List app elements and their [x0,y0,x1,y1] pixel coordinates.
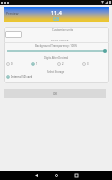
staticText: 3 [87,62,89,66]
staticText: Internal SD card [11,75,33,79]
button[interactable]: 0 [6,62,28,66]
staticText: Select Storage [47,70,65,74]
staticText: Digits After Decimal [44,56,69,60]
button[interactable] [5,48,107,54]
button[interactable]: Customize units [24,27,101,32]
staticText: Customize units [52,28,74,32]
staticText: FONT COLOR [51,38,69,41]
staticText: Background Transparency: 100% [35,44,78,48]
staticText: Preview [6,11,19,16]
button[interactable]: 1 [31,62,53,66]
button[interactable]: Internal SD card [6,74,33,80]
button[interactable]: 3 [82,62,104,66]
button[interactable]: 2 [57,62,79,66]
staticText: OK [53,92,58,96]
staticText: 1 [36,62,38,66]
button[interactable]: FONT COLOR [24,37,96,42]
staticText: GB [53,16,60,22]
button[interactable]: OK [4,89,106,98]
button[interactable] [5,31,22,38]
button[interactable]: Home [46,171,66,180]
staticText: 2 [62,62,64,66]
button[interactable]: Recent apps [66,171,86,180]
staticText: 0 [11,62,13,66]
button[interactable]: Back [26,171,46,180]
staticText: 11.4 [51,9,62,16]
